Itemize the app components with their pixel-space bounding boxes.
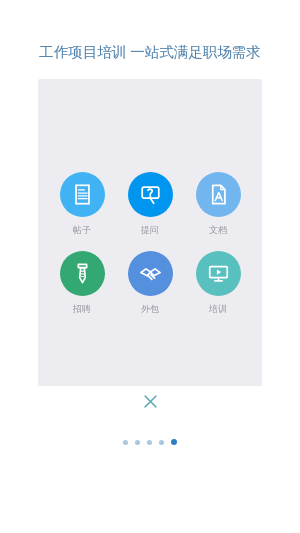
- button[interactable]: 提问: [122, 172, 178, 235]
- button[interactable]: 培训: [190, 251, 246, 314]
- staticText: 培训: [209, 303, 227, 314]
- staticText: 帖子: [73, 224, 91, 235]
- staticText: 招聘: [73, 303, 91, 314]
- staticText: 外包: [141, 303, 159, 314]
- button[interactable]: Close: [38, 386, 262, 416]
- staticText: 提问: [141, 224, 159, 235]
- button[interactable]: 文档: [190, 172, 246, 235]
- staticText: 工作项目培训 一站式满足职场需求: [39, 41, 261, 61]
- button[interactable]: 招聘: [54, 251, 110, 314]
- button[interactable]: 外包: [122, 251, 178, 314]
- button[interactable]: 帖子: [54, 172, 110, 235]
- staticText: 文档: [209, 224, 227, 235]
